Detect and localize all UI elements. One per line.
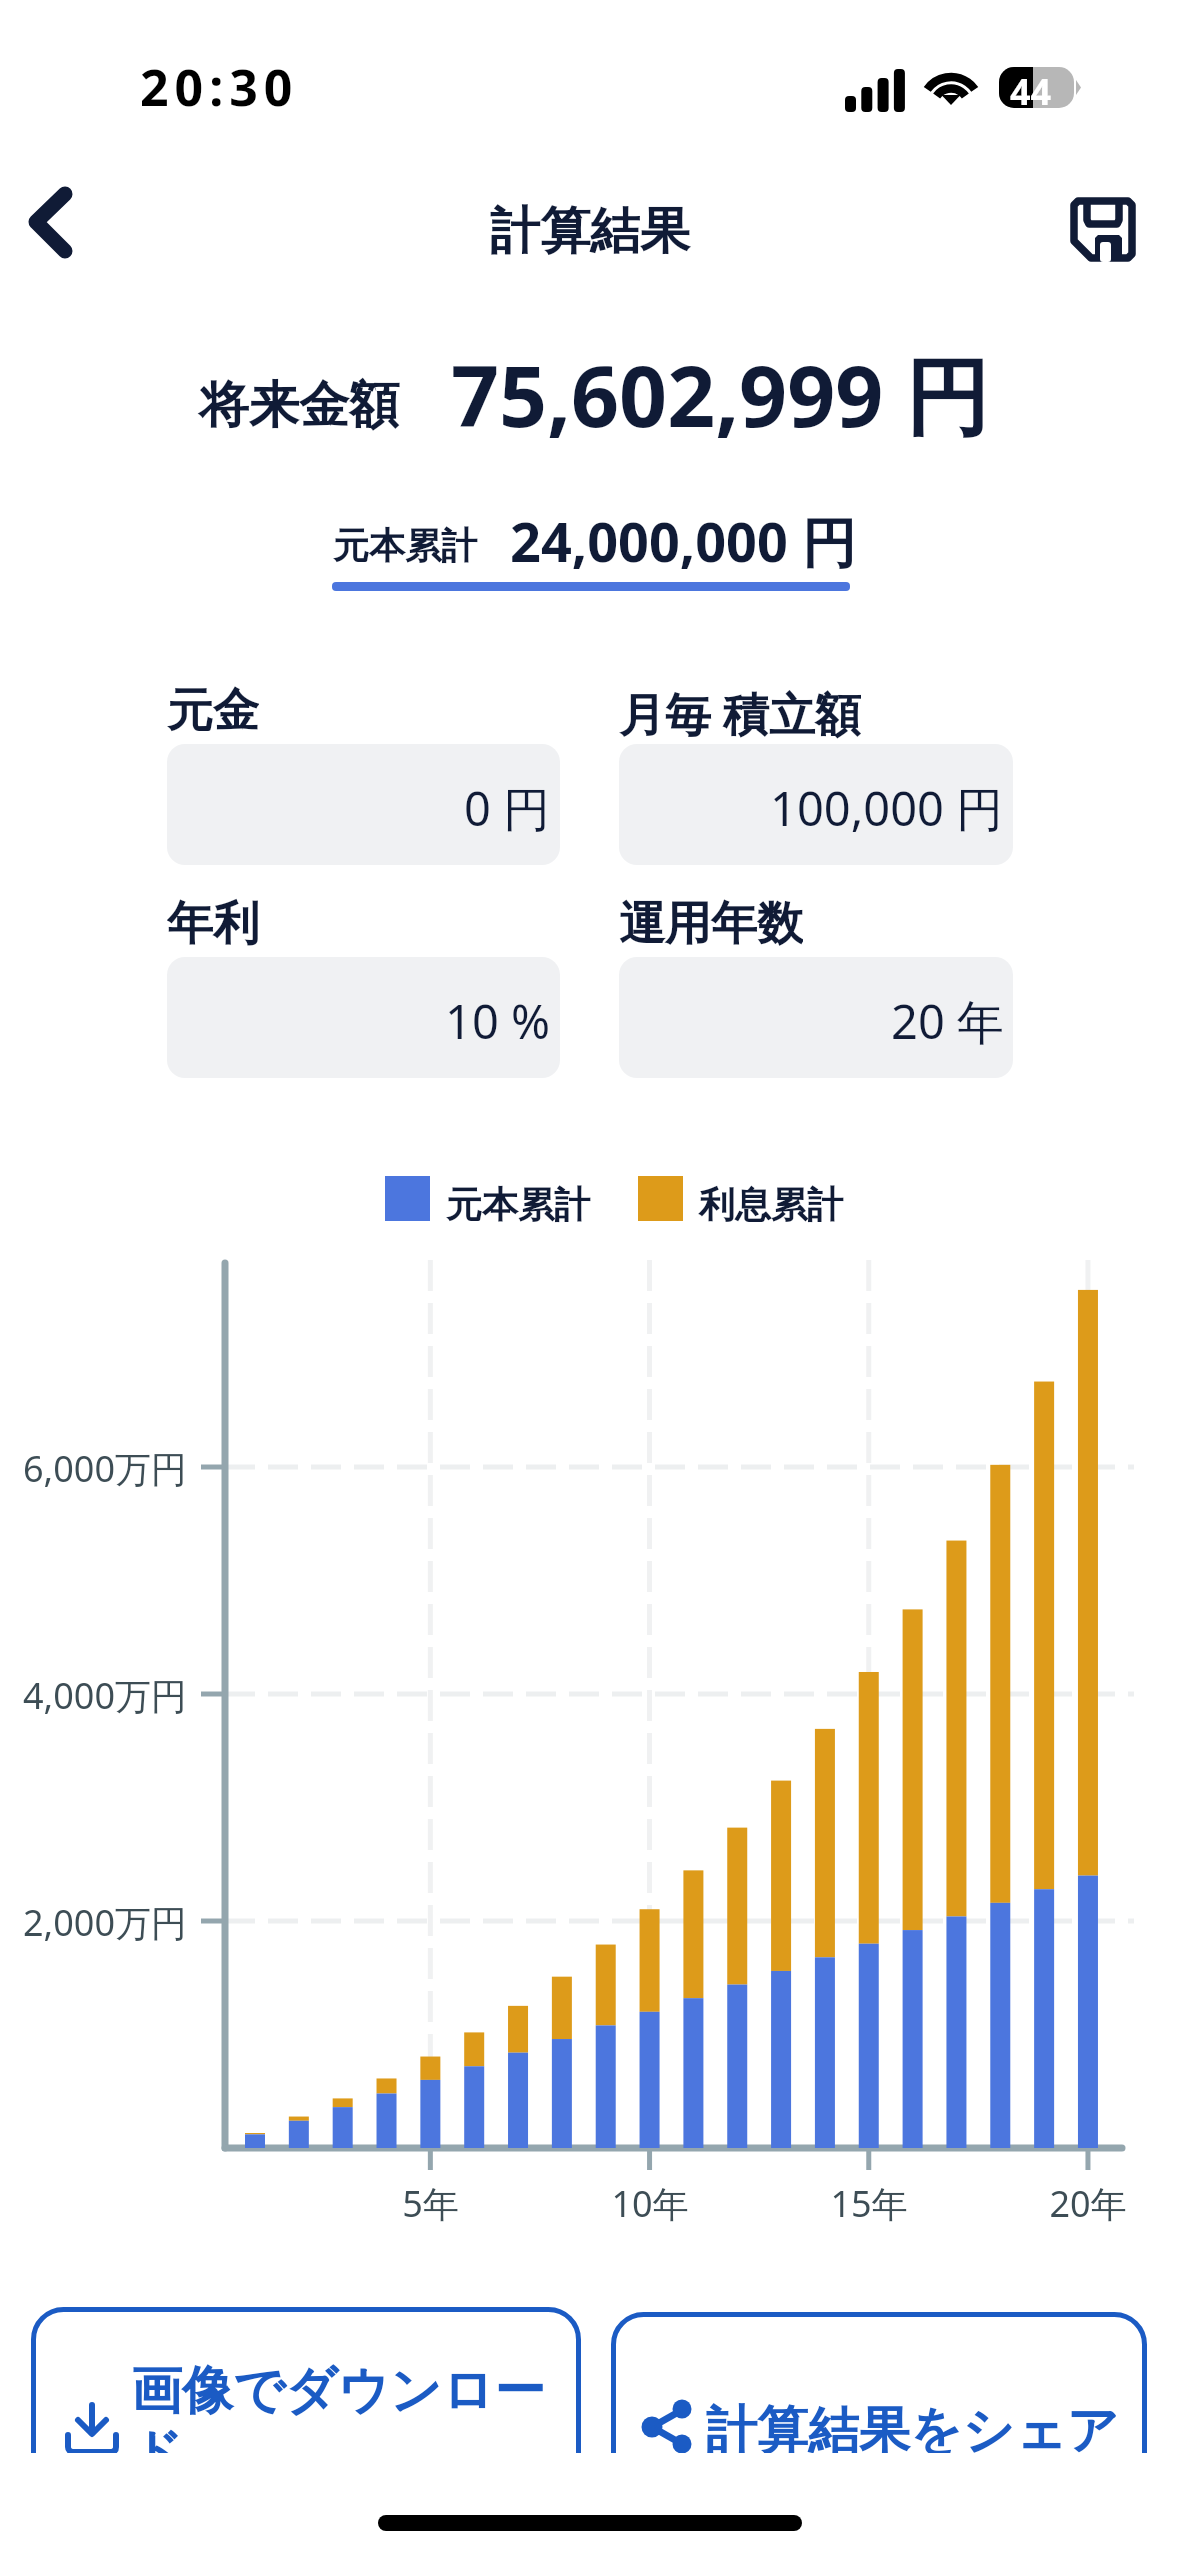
staticText: 5年 xyxy=(402,2179,459,2228)
button[interactable]: 計算結果をシェア xyxy=(611,2312,1147,2453)
staticText: 20 年 xyxy=(891,989,1004,1053)
staticText: 計算結果をシェア xyxy=(706,2399,1119,2453)
staticText: 6,000万円 xyxy=(23,1444,188,1493)
staticText: 画像でダウンロード xyxy=(131,2359,546,2453)
button[interactable]: 100,000 円 xyxy=(619,744,1013,865)
staticText: 2,000万円 xyxy=(23,1898,188,1947)
staticText: 20:30 xyxy=(140,53,299,121)
button[interactable]: 20 年 xyxy=(619,957,1013,1078)
button[interactable]: Back xyxy=(5,163,105,283)
staticText: 10年 xyxy=(611,2179,689,2228)
staticText: 0 円 xyxy=(464,776,551,840)
staticText: 元金 xyxy=(167,682,259,739)
staticText: 運用年数 xyxy=(619,895,803,952)
staticText: 44 xyxy=(1010,67,1052,116)
staticText: 将来金額 xyxy=(199,374,399,437)
staticText: 元本累計 xyxy=(446,1182,590,1227)
staticText: 4,000万円 xyxy=(23,1671,188,1720)
staticText: 月毎 積立額 xyxy=(619,682,861,739)
staticText: 24,000,000 円 xyxy=(510,504,856,578)
button[interactable]: 0 円 xyxy=(167,744,560,865)
staticText: 75,602,999 円 xyxy=(451,337,990,452)
staticText: 計算結果 xyxy=(490,200,690,263)
button[interactable]: Save xyxy=(1050,177,1152,279)
button[interactable]: 10 % xyxy=(167,957,560,1078)
staticText: 15年 xyxy=(830,2179,908,2228)
staticText: 100,000 円 xyxy=(770,776,1004,840)
staticText: 年利 xyxy=(167,895,259,952)
staticText: 利息累計 xyxy=(699,1182,843,1227)
staticText: 10 % xyxy=(445,989,551,1053)
staticText: 元本累計 xyxy=(333,523,477,568)
staticText: 20年 xyxy=(1049,2179,1127,2228)
button[interactable]: 画像でダウンロード xyxy=(31,2307,581,2453)
